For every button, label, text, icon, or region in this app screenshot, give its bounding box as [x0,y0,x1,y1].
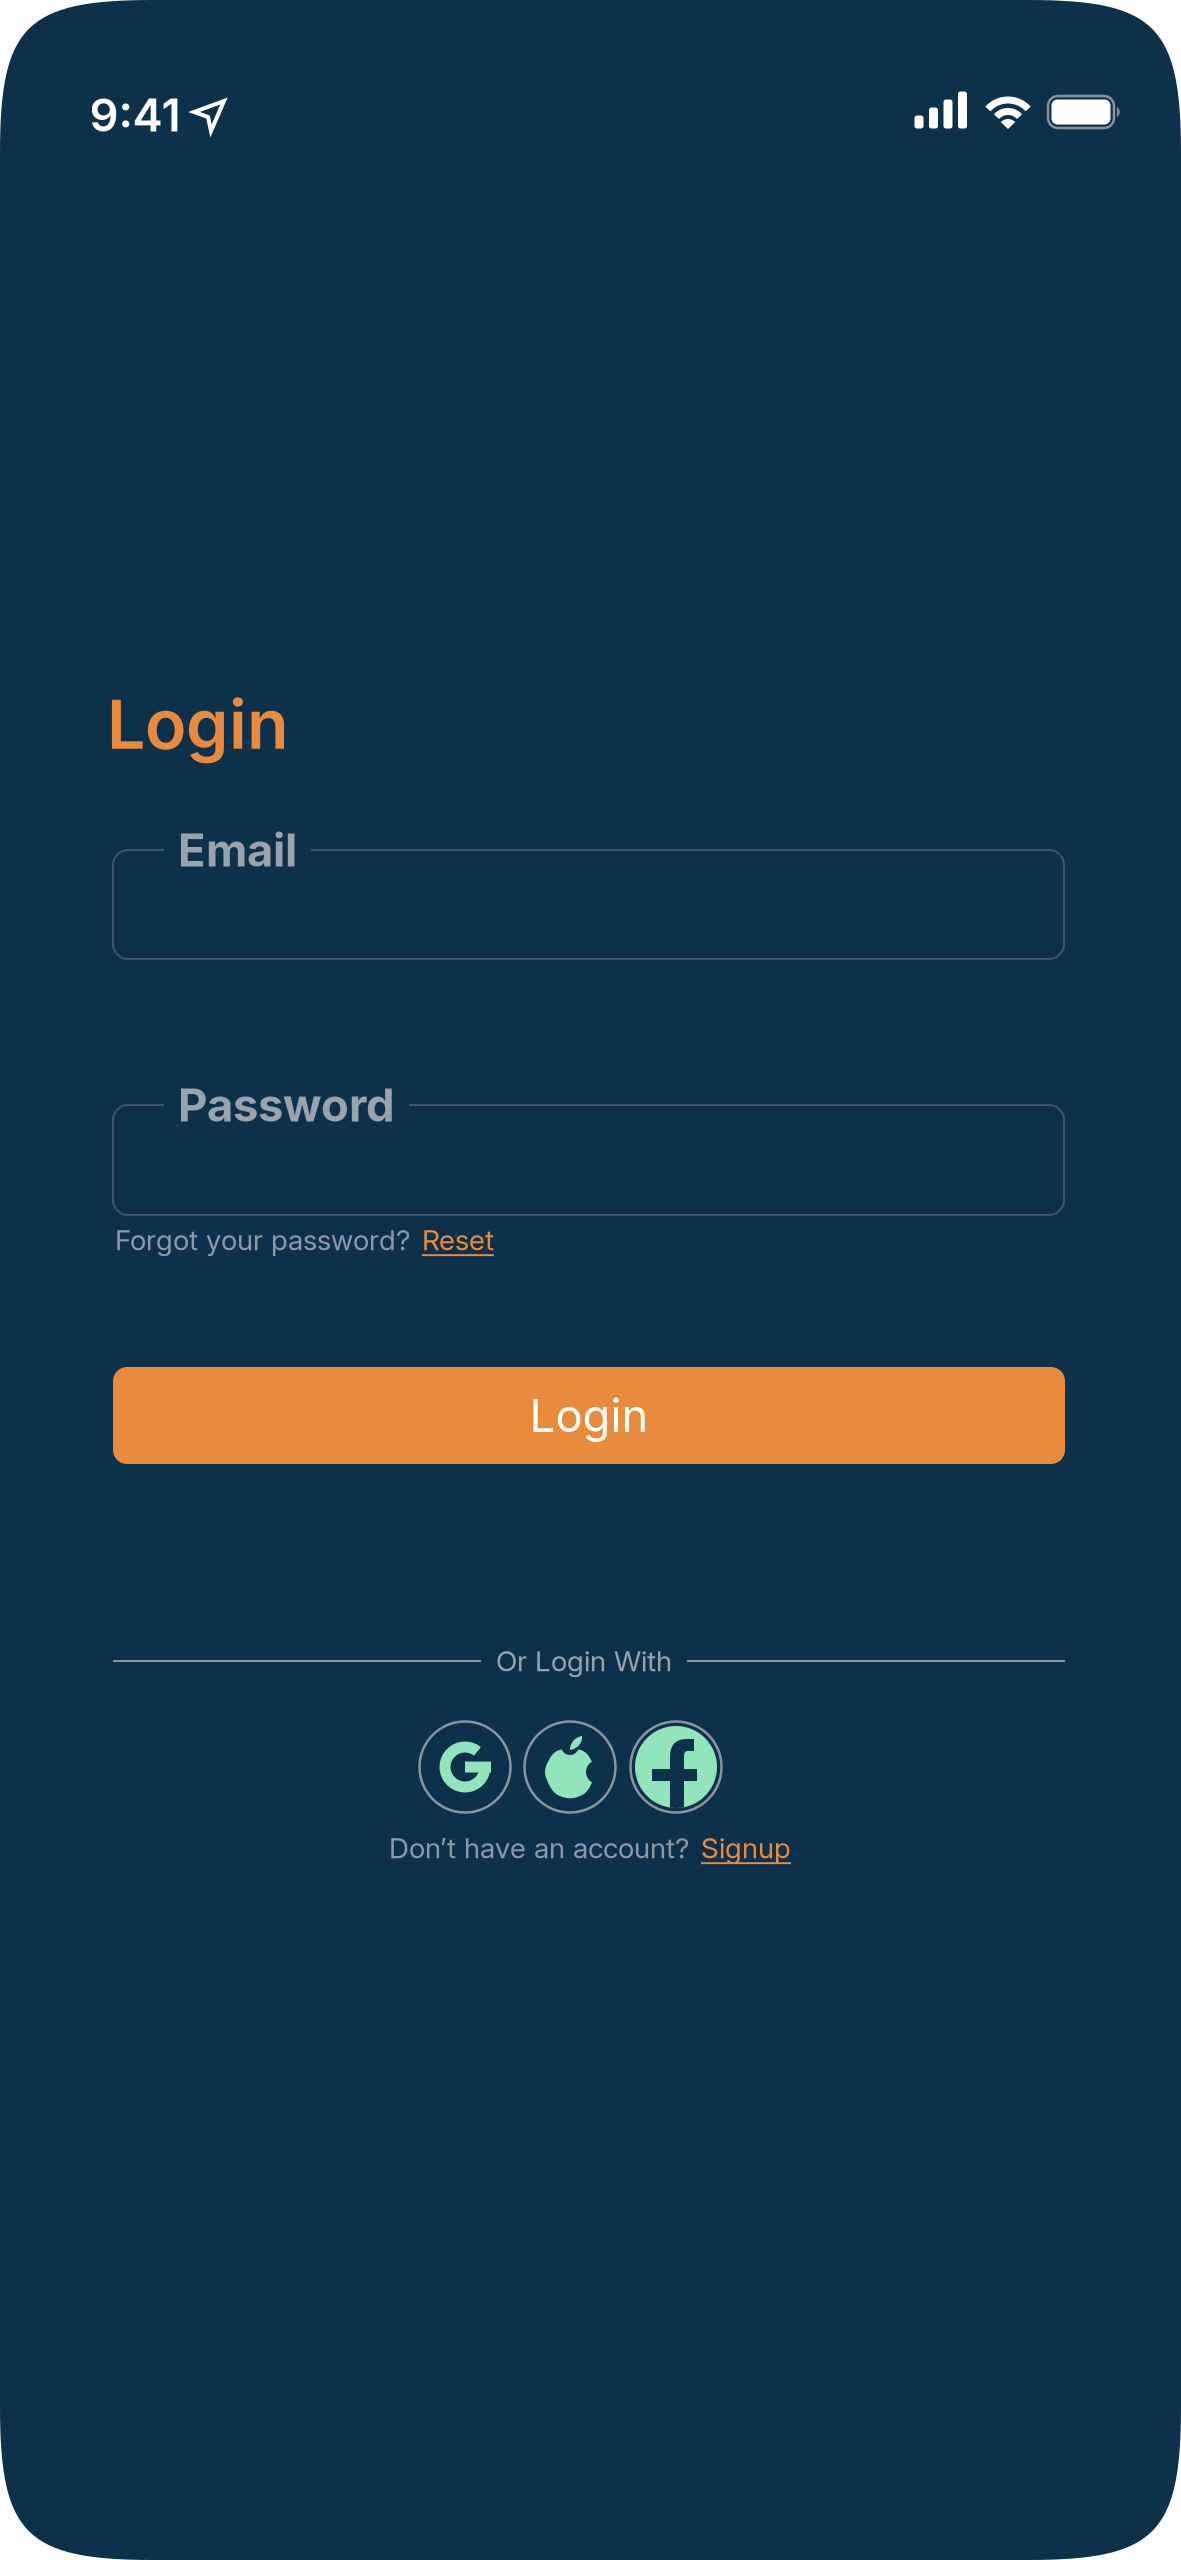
staticText: Login [529,1389,648,1442]
button[interactable]: Login [113,1367,1065,1464]
staticText: Forgot your password? [115,1223,410,1256]
staticText: Or Login With [496,1644,672,1677]
staticText: Email [178,823,297,877]
button[interactable]: Login with Apple [524,1721,615,1812]
button[interactable]: Password [113,1105,1064,1215]
staticText: Password [178,1078,395,1132]
staticText: Reset [422,1223,494,1256]
button[interactable]: Login with Google [419,1721,510,1812]
staticText: 9:41 [89,88,180,142]
staticText: Login [107,684,289,764]
button[interactable]: Reset [422,1223,494,1256]
staticText: Signup [701,1831,791,1864]
staticText: Don’t have an account? [389,1831,689,1864]
button[interactable]: Login with Facebook [630,1721,721,1812]
button[interactable]: Signup [701,1831,791,1864]
button[interactable]: Email [113,850,1064,959]
